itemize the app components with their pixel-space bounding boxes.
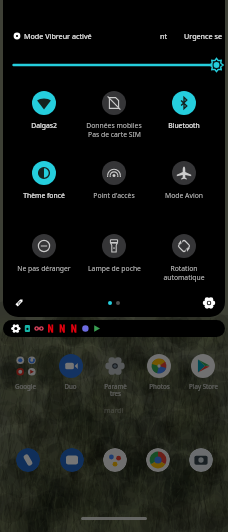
button[interactable]: Google bbox=[3, 354, 48, 390]
button[interactable]: Rotation automatique bbox=[149, 234, 219, 282]
staticText: Rotation automatique bbox=[151, 264, 217, 282]
button[interactable]: Thème foncé bbox=[9, 161, 79, 200]
button[interactable]: Lampe de poche bbox=[79, 234, 149, 273]
staticText: Mode Avion bbox=[165, 191, 203, 200]
staticText: nt bbox=[160, 31, 168, 41]
button[interactable]: Contacts bbox=[103, 448, 127, 472]
button[interactable]: Ne pas déranger bbox=[9, 234, 79, 273]
staticText: Mode Vibreur activé bbox=[24, 31, 92, 41]
staticText: Pas de carte SIM bbox=[88, 130, 141, 139]
staticText: mardi bbox=[104, 406, 124, 416]
button[interactable]: Bluetooth bbox=[149, 91, 219, 130]
staticText: Google bbox=[15, 382, 36, 390]
button[interactable]: Messages bbox=[60, 448, 84, 472]
staticText: Lampe de poche bbox=[88, 264, 141, 273]
button[interactable]: Mode Avion bbox=[149, 161, 219, 200]
button[interactable]: Phone bbox=[16, 448, 40, 472]
staticText: Bluetooth bbox=[168, 121, 200, 130]
staticText: Thème foncé bbox=[23, 191, 65, 200]
button[interactable]: Duo bbox=[48, 354, 93, 390]
button[interactable]: Play Store bbox=[181, 354, 225, 390]
button[interactable]: Brightness bbox=[13, 57, 220, 73]
staticText: Point d'accès bbox=[93, 191, 135, 200]
staticText: Paramè tres bbox=[104, 382, 127, 398]
button[interactable]: Camera bbox=[189, 448, 213, 472]
staticText: Données mobiles bbox=[86, 121, 142, 130]
button[interactable]: Chrome bbox=[146, 448, 170, 472]
button[interactable]: Paramè tres bbox=[93, 354, 137, 398]
button[interactable]: Dalgas2 bbox=[9, 91, 79, 130]
staticText: Photos bbox=[149, 382, 170, 390]
staticText: Dalgas2 bbox=[31, 121, 57, 130]
button[interactable]: Open settings bbox=[199, 293, 219, 313]
button[interactable]: Point d'accès bbox=[79, 161, 149, 200]
button[interactable]: Edit tiles bbox=[9, 293, 29, 313]
staticText: Urgence se bbox=[184, 31, 222, 41]
staticText: Play Store bbox=[189, 382, 218, 390]
staticText: Ne pas déranger bbox=[17, 264, 71, 273]
staticText: Duo bbox=[64, 382, 77, 390]
button[interactable]: Photos bbox=[137, 354, 181, 390]
button[interactable]: Données mobiles bbox=[79, 91, 149, 139]
